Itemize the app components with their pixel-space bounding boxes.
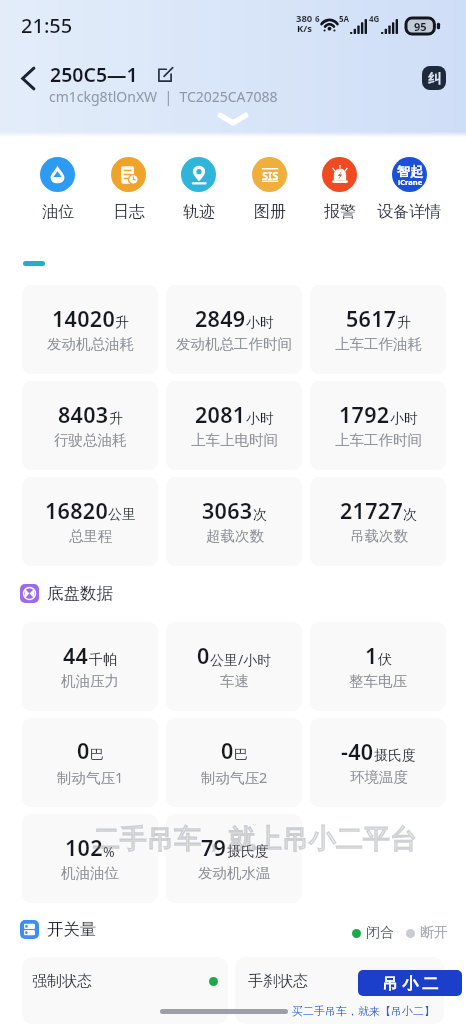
button[interactable]: 14020 [22, 285, 158, 374]
button[interactable]: 油位 [22, 157, 92, 222]
button[interactable]: SIS [234, 157, 304, 222]
staticText: 整车电压 [349, 672, 407, 690]
staticText: 95 [414, 19, 427, 34]
staticText: 升 [109, 410, 123, 428]
staticText: 0 [77, 736, 90, 765]
staticText: 二手吊车，就上吊小二平台 [93, 822, 417, 856]
button[interactable]: 8403 [22, 381, 158, 470]
button[interactable]: 轨迹 [163, 157, 233, 222]
button[interactable]: 1792 [310, 381, 446, 470]
staticText: 纠 [428, 70, 441, 86]
staticText: 8403 [58, 400, 109, 429]
staticText: -40 [341, 737, 374, 766]
button[interactable]: 3063 [166, 477, 302, 566]
staticText: 摄氏度 [227, 843, 269, 861]
staticText: iCrane [398, 177, 423, 187]
staticText: 102 [65, 833, 103, 862]
staticText: 44 [63, 641, 89, 670]
button[interactable]: 79 [166, 814, 302, 903]
button[interactable]: 44 [22, 622, 158, 711]
staticText: % [103, 842, 115, 861]
staticText: 千帕 [89, 651, 117, 669]
staticText: 5A [339, 13, 350, 24]
staticText: 吊 小 二 [382, 972, 439, 994]
staticText: 79 [201, 833, 227, 862]
staticText: 6 [315, 13, 320, 24]
staticText: 次 [253, 506, 267, 524]
staticText: 强制状态 [32, 972, 92, 991]
staticText: 小时 [246, 314, 274, 332]
button[interactable]: 0 [22, 718, 158, 807]
staticText: 行驶总油耗 [54, 431, 127, 449]
staticText: 公里/小时 [210, 650, 272, 669]
staticText: cm1ckg8tlOnXW | TC2025CA7088 [49, 87, 278, 106]
button[interactable]: 纠错 [421, 65, 447, 91]
button[interactable]: 2081 [166, 381, 302, 470]
button[interactable]: 智起 [374, 157, 444, 222]
staticText: 报警 [324, 202, 356, 222]
staticText: 超载次数 [206, 527, 264, 545]
staticText: 巴 [234, 746, 248, 764]
staticText: 小时 [390, 410, 418, 428]
staticText: 买二手吊车，就来【吊小二】 [292, 1004, 435, 1018]
staticText: 升 [115, 314, 129, 332]
button[interactable]: 日志 [93, 157, 163, 222]
staticText: 5617 [346, 304, 397, 333]
staticText: 16820 [45, 496, 108, 525]
button[interactable]: 2849 [166, 285, 302, 374]
staticText: 日志 [113, 202, 145, 222]
staticText: 摄氏度 [374, 747, 416, 765]
staticText: 升 [397, 314, 411, 332]
button[interactable]: 0 [166, 718, 302, 807]
staticText: 3063 [202, 496, 253, 525]
button[interactable]: 5617 [310, 285, 446, 374]
staticText: 设备详情 [377, 202, 441, 222]
staticText: 发动机总工作时间 [176, 335, 292, 353]
staticText: 伏 [378, 651, 392, 669]
staticText: 闭合 [366, 924, 394, 942]
button[interactable]: 吊 小 二 [358, 970, 462, 996]
staticText: 轨迹 [183, 202, 215, 222]
staticText: K/s [297, 22, 313, 35]
button[interactable]: Back [10, 62, 46, 94]
staticText: 上车工作时间 [335, 431, 422, 449]
button[interactable]: 强制状态 [22, 957, 228, 1024]
staticText: 总里程 [69, 527, 113, 545]
staticText: 14020 [52, 304, 115, 333]
staticText: 0 [197, 641, 210, 670]
staticText: 380 [296, 12, 313, 25]
staticText: 断开 [420, 924, 448, 942]
staticText: 上车工作油耗 [335, 335, 422, 353]
staticText: 智起 [397, 163, 423, 179]
staticText: 1 [365, 641, 378, 670]
button[interactable]: 102 [22, 814, 158, 903]
staticText: 250C5—1 [50, 61, 138, 88]
staticText: 次 [403, 506, 417, 524]
staticText: 油位 [42, 202, 74, 222]
staticText: 2849 [195, 304, 246, 333]
staticText: 0 [221, 736, 234, 765]
button[interactable]: -40 [310, 718, 446, 807]
staticText: 小时 [246, 410, 274, 428]
button[interactable]: 1 [310, 622, 446, 711]
staticText: SIS [262, 168, 279, 183]
staticText: 21:55 [21, 12, 73, 39]
staticText: 1792 [339, 400, 390, 429]
button[interactable]: Edit name [153, 63, 177, 87]
button[interactable]: 16820 [22, 477, 158, 566]
staticText: 环境温度 [350, 768, 408, 786]
button[interactable]: 0 [166, 622, 302, 711]
staticText: 吊载次数 [350, 527, 408, 545]
staticText: 发动机总油耗 [47, 335, 134, 353]
staticText: 21727 [340, 496, 403, 525]
button[interactable]: 报警 [304, 157, 374, 222]
staticText: 2081 [195, 400, 246, 429]
staticText: 公里 [108, 506, 136, 524]
button[interactable]: 21727 [310, 477, 446, 566]
staticText: 制动气压1 [57, 767, 124, 787]
staticText: 巴 [90, 746, 104, 764]
staticText: 底盘数据 [47, 583, 113, 604]
button[interactable]: 手刹状态 [235, 957, 444, 1024]
staticText: 图册 [254, 202, 286, 222]
staticText: 制动气压2 [201, 767, 268, 787]
